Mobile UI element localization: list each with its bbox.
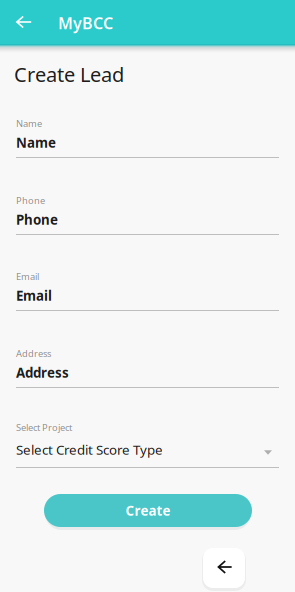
button[interactable]: Back: [203, 548, 245, 588]
staticText: Address: [16, 347, 51, 360]
button[interactable]: Select Project: [16, 422, 279, 468]
staticText: Name: [16, 134, 56, 151]
staticText: Phone: [16, 211, 58, 228]
staticText: Create: [125, 502, 170, 519]
staticText: Select Project: [16, 421, 72, 434]
staticText: Address: [16, 364, 69, 381]
staticText: Name: [16, 117, 42, 130]
button[interactable]: Create: [44, 494, 252, 527]
staticText: Phone: [16, 194, 45, 207]
staticText: Select Credit Score Type: [16, 441, 163, 458]
staticText: Email: [16, 270, 39, 283]
staticText: Create Lead: [14, 61, 124, 88]
staticText: MyBCC: [58, 12, 113, 34]
button[interactable]: Back: [6, 0, 42, 44]
staticText: Email: [16, 287, 52, 304]
